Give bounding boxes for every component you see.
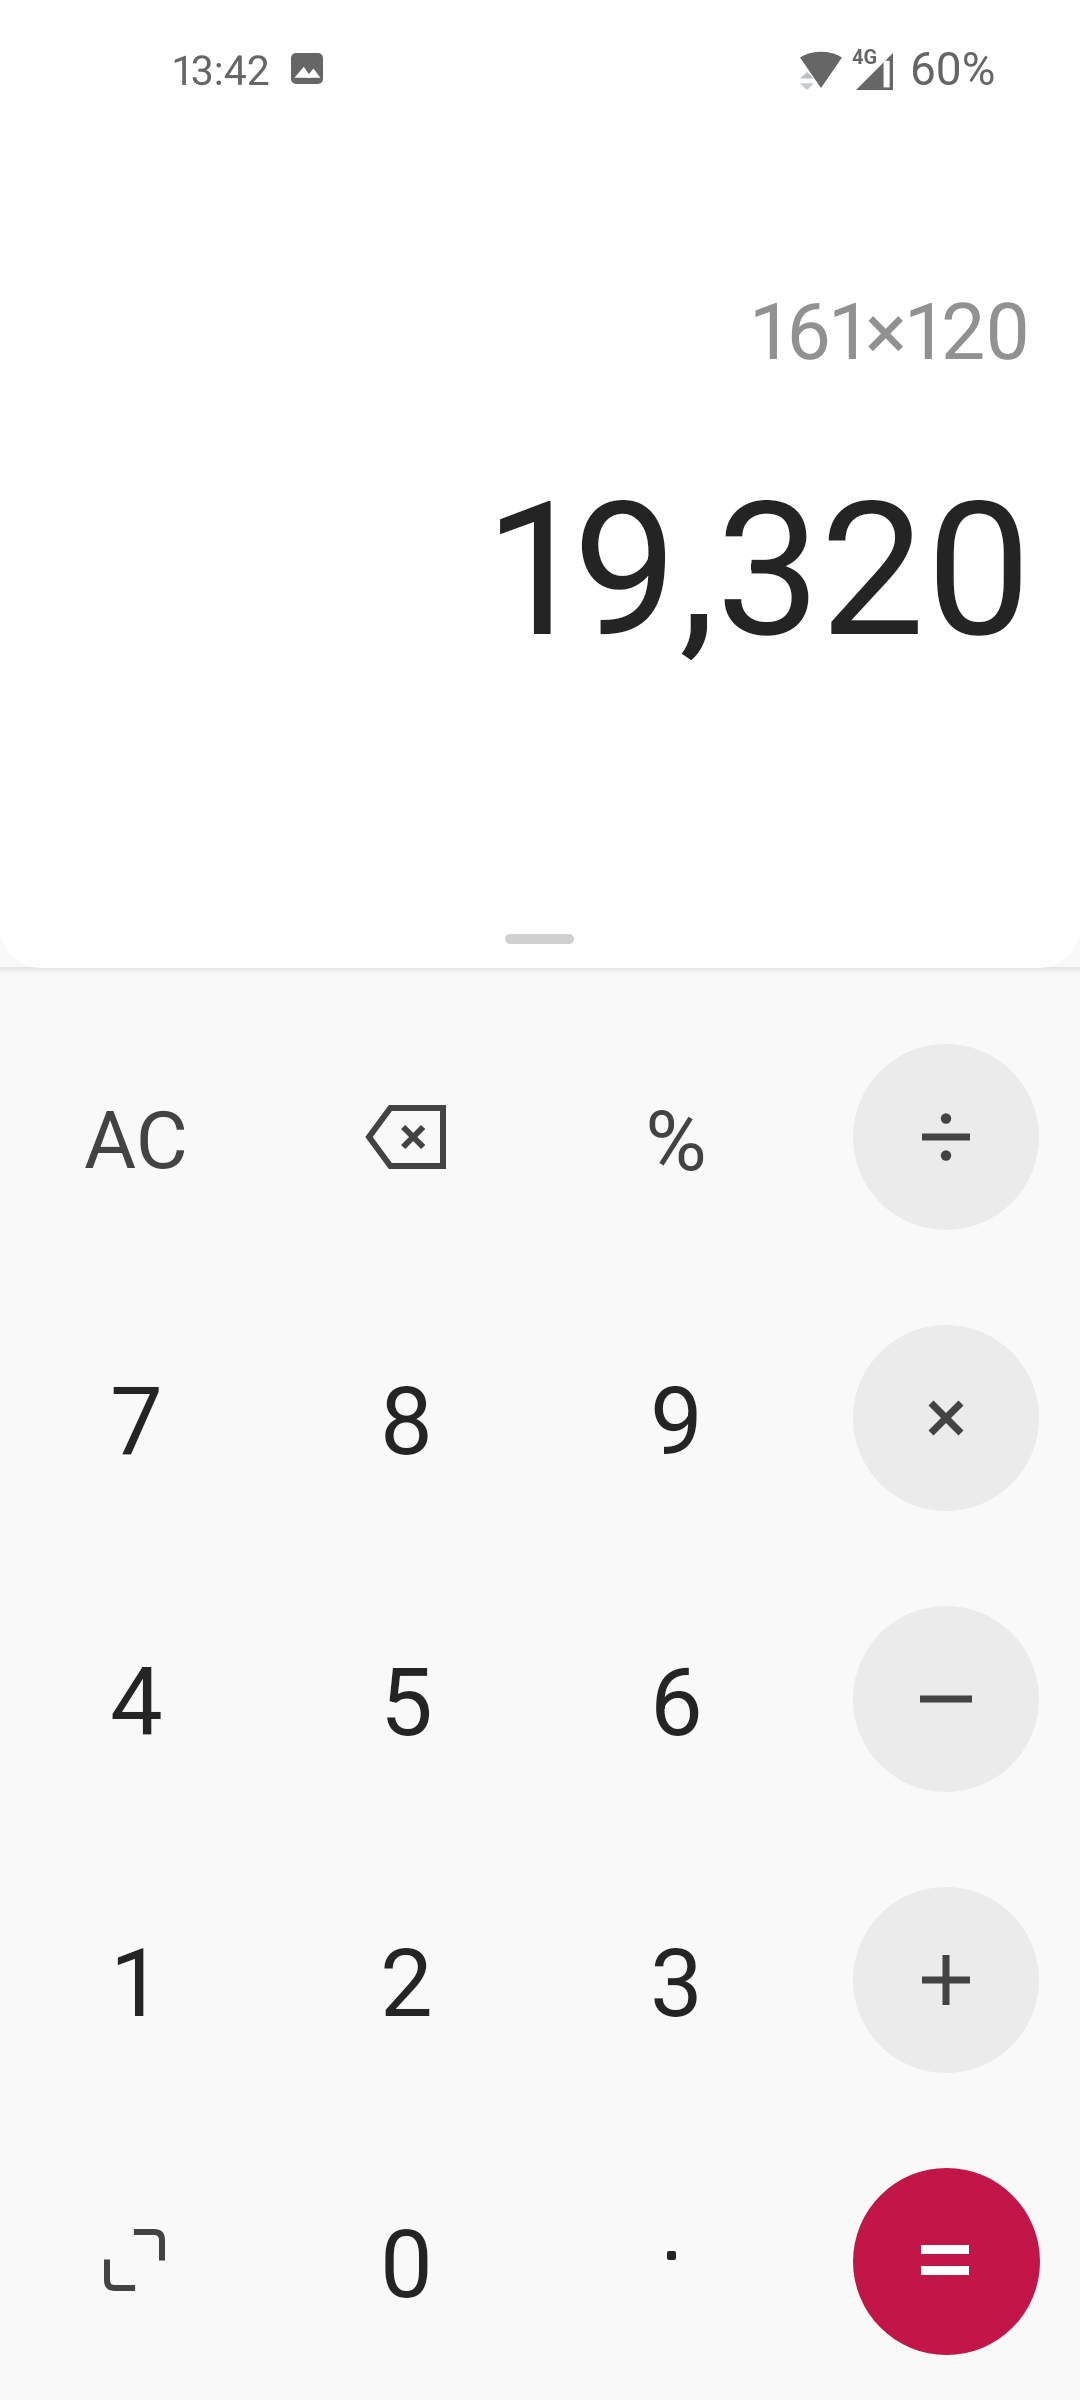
staticText: 4G — [852, 45, 878, 68]
button[interactable]: 3 — [576, 1880, 776, 2080]
staticText: 13:42 — [173, 47, 270, 95]
staticText: 2 — [380, 1929, 433, 2039]
staticText: 19,320 — [492, 461, 1033, 679]
staticText: 1 — [110, 1929, 163, 2039]
staticText: % — [645, 1092, 707, 1190]
button[interactable]: Multiply — [846, 1318, 1046, 1518]
button[interactable]: 4 — [36, 1599, 236, 1799]
button[interactable]: Add — [846, 1880, 1046, 2080]
staticText: 7 — [110, 1367, 163, 1477]
button[interactable]: 9 — [576, 1318, 776, 1518]
staticText: 6 — [650, 1648, 703, 1758]
button[interactable]: 8 — [306, 1318, 506, 1518]
staticText: 60% — [910, 42, 996, 96]
staticText: 5 — [380, 1648, 433, 1758]
button[interactable]: Scientific mode — [36, 2161, 236, 2361]
button[interactable]: % — [576, 1037, 776, 1237]
button[interactable]: Subtract — [846, 1599, 1046, 1799]
button[interactable]: Decimal point — [576, 2161, 776, 2361]
staticText: AC — [84, 1094, 188, 1188]
button[interactable]: AC — [36, 1037, 236, 1237]
button[interactable]: Divide — [846, 1037, 1046, 1237]
button[interactable]: Backspace — [306, 1037, 506, 1237]
staticText: 161×120 — [752, 286, 1031, 378]
button[interactable]: 2 — [306, 1880, 506, 2080]
button[interactable]: 6 — [576, 1599, 776, 1799]
button[interactable]: 5 — [306, 1599, 506, 1799]
staticText: 4 — [110, 1648, 163, 1758]
staticText: 9 — [650, 1367, 703, 1477]
staticText: 3 — [650, 1929, 703, 2039]
button[interactable]: 0 — [306, 2161, 506, 2361]
button[interactable]: 7 — [36, 1318, 236, 1518]
staticText: 0 — [380, 2210, 433, 2320]
button[interactable]: Equals — [846, 2161, 1046, 2361]
button[interactable]: 1 — [36, 1880, 236, 2080]
staticText: 8 — [380, 1367, 433, 1477]
